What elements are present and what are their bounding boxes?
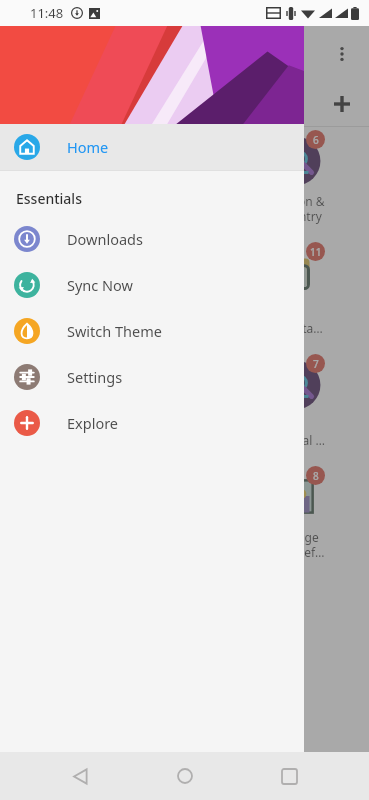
button[interactable]: Home — [0, 124, 304, 170]
button[interactable]: Add — [323, 85, 361, 123]
staticText: 6 — [313, 133, 319, 147]
button[interactable]: Settings — [0, 354, 304, 400]
staticText: 11 — [310, 245, 322, 259]
staticText: 11:48 — [30, 4, 64, 22]
button[interactable]: Sync Now — [0, 262, 304, 308]
button[interactable]: Switch Theme — [0, 308, 304, 354]
button[interactable]: More options — [325, 37, 359, 71]
staticText: Sync Now — [67, 275, 133, 295]
staticText: xcel - ditional … — [270, 417, 326, 448]
staticText: Home — [67, 137, 109, 157]
staticText: Essentials — [16, 189, 82, 208]
staticText: d - Page ut & Ref… — [270, 529, 325, 560]
staticText: Excel amenta… — [270, 305, 323, 336]
staticText: duction & her Entry — [270, 193, 325, 224]
staticText: Downloads — [67, 229, 143, 249]
button[interactable]: Recent apps — [265, 752, 313, 800]
staticText: 7 — [313, 357, 319, 371]
staticText: Settings — [67, 367, 123, 387]
button[interactable]: Back — [56, 752, 104, 800]
staticText: Switch Theme — [67, 321, 162, 341]
staticText: 8 — [313, 469, 319, 483]
button[interactable]: Explore — [0, 400, 304, 446]
staticText: Explore — [67, 413, 119, 433]
button[interactable]: Downloads — [0, 216, 304, 262]
button[interactable]: Home — [161, 752, 209, 800]
